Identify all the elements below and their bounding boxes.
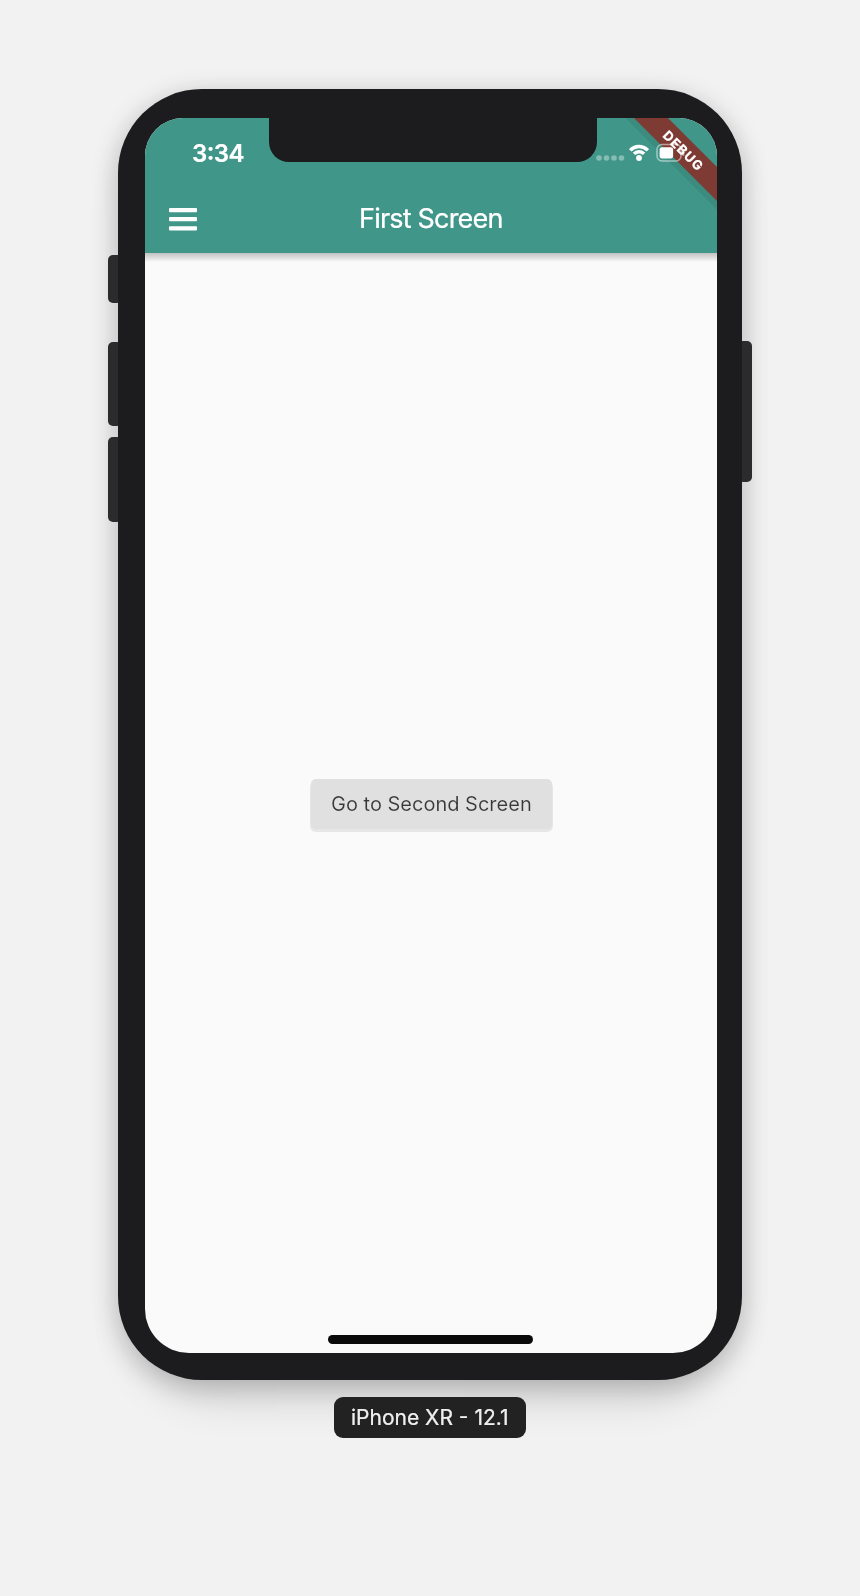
button[interactable]: Go to Second Screen — [311, 779, 552, 829]
staticText: iPhone XR - 12.1 — [351, 1405, 509, 1430]
staticText: DEBUG — [660, 127, 708, 175]
staticText: Go to Second Screen — [331, 792, 532, 816]
button[interactable] — [157, 197, 209, 241]
staticText: First Screen — [359, 202, 503, 235]
staticText: 3:34 — [192, 139, 244, 168]
